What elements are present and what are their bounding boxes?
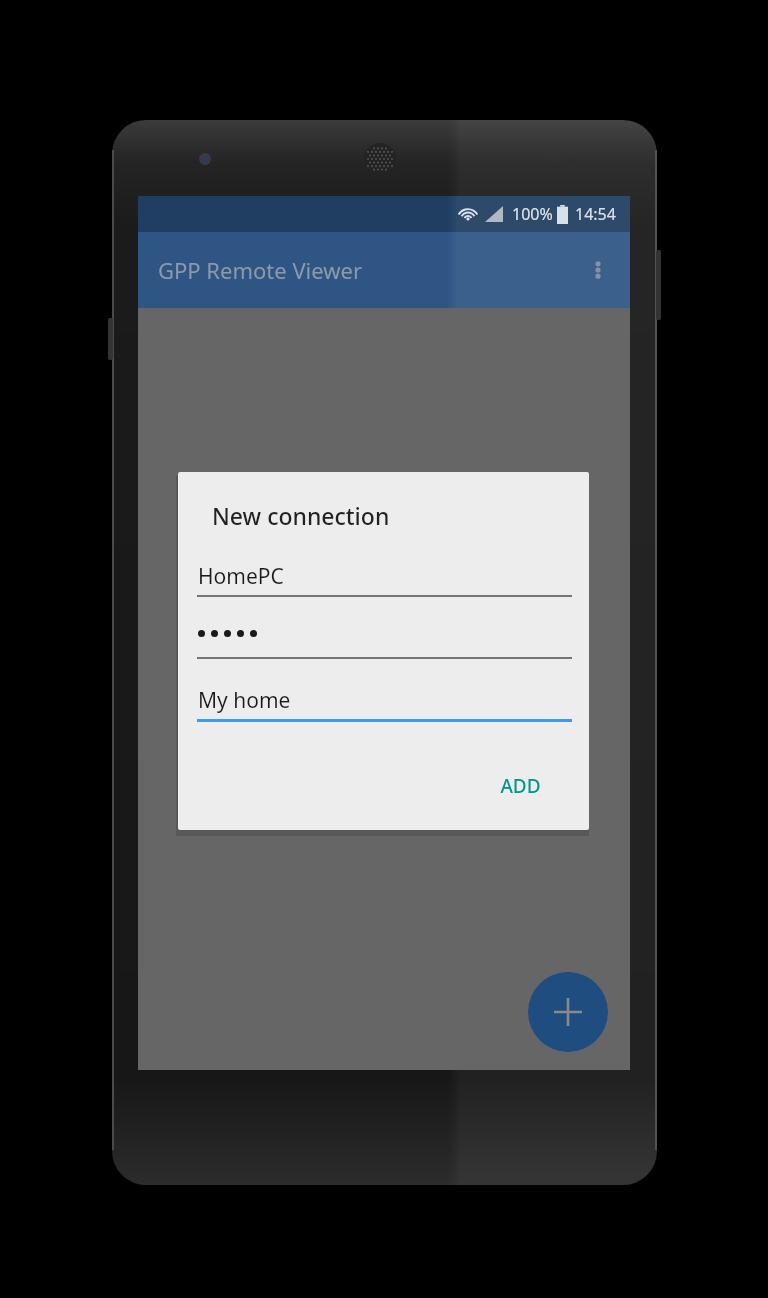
staticText: GPP Remote Viewer (158, 255, 363, 285)
button[interactable]: Add connection (528, 972, 608, 1052)
button[interactable]: More options (574, 246, 622, 294)
staticText: New connection (212, 500, 390, 531)
staticText: 100% (512, 203, 553, 225)
staticText: My home (198, 686, 291, 715)
staticText: ADD (500, 773, 541, 799)
staticText: 14:54 (575, 203, 616, 225)
staticText: HomePC (198, 562, 284, 591)
button[interactable]: ADD (478, 764, 562, 808)
